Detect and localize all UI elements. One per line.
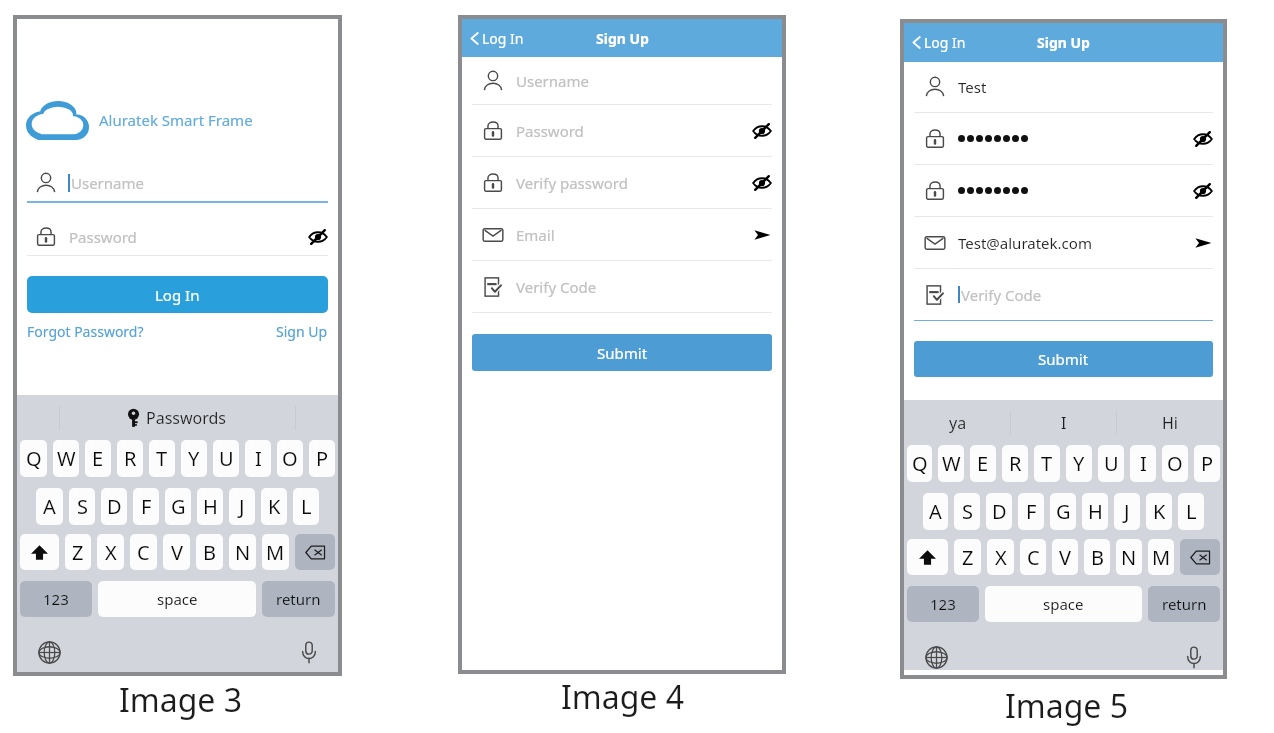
staticText: I xyxy=(1140,450,1147,477)
button[interactable]: R xyxy=(1002,445,1028,482)
button[interactable]: Passwords xyxy=(128,407,227,429)
button[interactable]: P xyxy=(309,440,335,477)
button[interactable]: Submit xyxy=(914,341,1213,377)
staticText: Password xyxy=(69,227,137,247)
button[interactable]: Log In xyxy=(911,33,966,52)
button[interactable]: T xyxy=(1034,445,1060,482)
button[interactable]: M xyxy=(262,534,289,570)
button[interactable]: N xyxy=(1116,539,1142,575)
button[interactable]: K xyxy=(1146,493,1172,530)
button[interactable]: Change keyboard xyxy=(923,644,949,670)
button[interactable]: Email xyxy=(472,209,772,261)
button[interactable]: M xyxy=(1148,539,1174,575)
button[interactable]: C xyxy=(130,534,157,570)
button[interactable]: Username xyxy=(27,164,328,203)
button[interactable]: space xyxy=(985,586,1142,622)
staticText: N xyxy=(235,539,251,566)
button[interactable]: O xyxy=(1162,445,1188,482)
staticText: Q xyxy=(912,450,928,477)
button[interactable]: A xyxy=(923,493,948,530)
button[interactable]: A xyxy=(36,488,63,525)
button[interactable]: D xyxy=(101,488,127,525)
button[interactable]: Log In xyxy=(27,276,328,313)
button[interactable]: V xyxy=(1052,539,1078,575)
button[interactable]: W xyxy=(938,445,964,482)
button[interactable]: V xyxy=(163,534,190,570)
button[interactable]: J xyxy=(229,488,255,525)
button[interactable]: W xyxy=(53,440,79,477)
button[interactable]: Sign Up xyxy=(276,322,328,341)
button[interactable]: ya xyxy=(904,400,1011,445)
button[interactable]: return xyxy=(1148,586,1220,622)
button[interactable]: X xyxy=(987,539,1014,575)
button[interactable]: Hi xyxy=(1117,400,1223,445)
button[interactable]: Log In xyxy=(469,29,524,48)
button[interactable]: Shift xyxy=(907,539,948,575)
button[interactable]: Q xyxy=(907,445,932,482)
button[interactable]: R xyxy=(117,440,143,477)
button[interactable]: Verify Code xyxy=(914,269,1213,321)
button[interactable] xyxy=(914,165,1213,217)
button[interactable]: B xyxy=(196,534,223,570)
button[interactable]: Backspace xyxy=(295,534,335,570)
button[interactable]: E xyxy=(970,445,996,482)
staticText: C xyxy=(137,539,150,566)
button[interactable]: Submit xyxy=(472,334,772,371)
button[interactable]: H xyxy=(197,488,223,525)
button[interactable]: S xyxy=(69,488,95,525)
button[interactable]: P xyxy=(1194,445,1220,482)
button[interactable]: D xyxy=(986,493,1012,530)
button[interactable]: L xyxy=(293,488,319,525)
button[interactable]: Backspace xyxy=(1180,539,1220,575)
button[interactable]: U xyxy=(213,440,239,477)
button[interactable]: Password xyxy=(472,105,772,157)
button[interactable]: I xyxy=(1011,400,1117,445)
button[interactable]: Verify password xyxy=(472,157,772,209)
button[interactable]: G xyxy=(165,488,191,525)
button[interactable]: B xyxy=(1084,539,1110,575)
button[interactable]: space xyxy=(98,581,256,617)
button[interactable]: Test xyxy=(914,62,1213,113)
button[interactable]: Y xyxy=(1066,445,1092,482)
button[interactable]: J xyxy=(1114,493,1140,530)
button[interactable]: H xyxy=(1082,493,1108,530)
button[interactable]: G xyxy=(1050,493,1076,530)
button[interactable]: return xyxy=(262,581,335,617)
staticText: Hi xyxy=(1162,412,1178,434)
button[interactable]: Username xyxy=(472,57,772,105)
staticText: 123 xyxy=(930,594,956,614)
button[interactable]: Z xyxy=(65,534,91,570)
button[interactable]: F xyxy=(133,488,159,525)
button[interactable]: X xyxy=(97,534,124,570)
button[interactable]: Change keyboard xyxy=(36,639,62,665)
button[interactable] xyxy=(914,113,1213,165)
button[interactable]: Test@aluratek.com xyxy=(914,217,1213,269)
button[interactable]: Shift xyxy=(20,534,59,570)
button[interactable]: S xyxy=(954,493,980,530)
button[interactable]: T xyxy=(149,440,175,477)
button[interactable]: Q xyxy=(20,440,47,477)
button[interactable]: I xyxy=(245,440,271,477)
staticText: Verify password xyxy=(516,173,628,193)
button[interactable]: O xyxy=(277,440,303,477)
button[interactable]: E xyxy=(85,440,111,477)
button[interactable]: Z xyxy=(954,539,981,575)
staticText: K xyxy=(1153,498,1166,525)
button[interactable]: 123 xyxy=(20,581,92,617)
staticText: O xyxy=(1167,450,1183,477)
button[interactable]: Password xyxy=(27,219,328,256)
button[interactable]: Verify Code xyxy=(472,261,772,313)
button[interactable]: I xyxy=(1130,445,1156,482)
button[interactable]: F xyxy=(1018,493,1044,530)
button[interactable]: 123 xyxy=(907,586,979,622)
button[interactable]: C xyxy=(1020,539,1046,575)
button[interactable]: Y xyxy=(181,440,207,477)
button[interactable]: Forgot Password? xyxy=(27,322,144,341)
button[interactable]: Dictate xyxy=(296,639,322,665)
staticText: T xyxy=(1041,450,1053,477)
button[interactable]: L xyxy=(1178,493,1204,530)
button[interactable]: K xyxy=(261,488,287,525)
button[interactable]: U xyxy=(1098,445,1124,482)
button[interactable]: Dictate xyxy=(1181,644,1207,670)
button[interactable]: N xyxy=(229,534,256,570)
